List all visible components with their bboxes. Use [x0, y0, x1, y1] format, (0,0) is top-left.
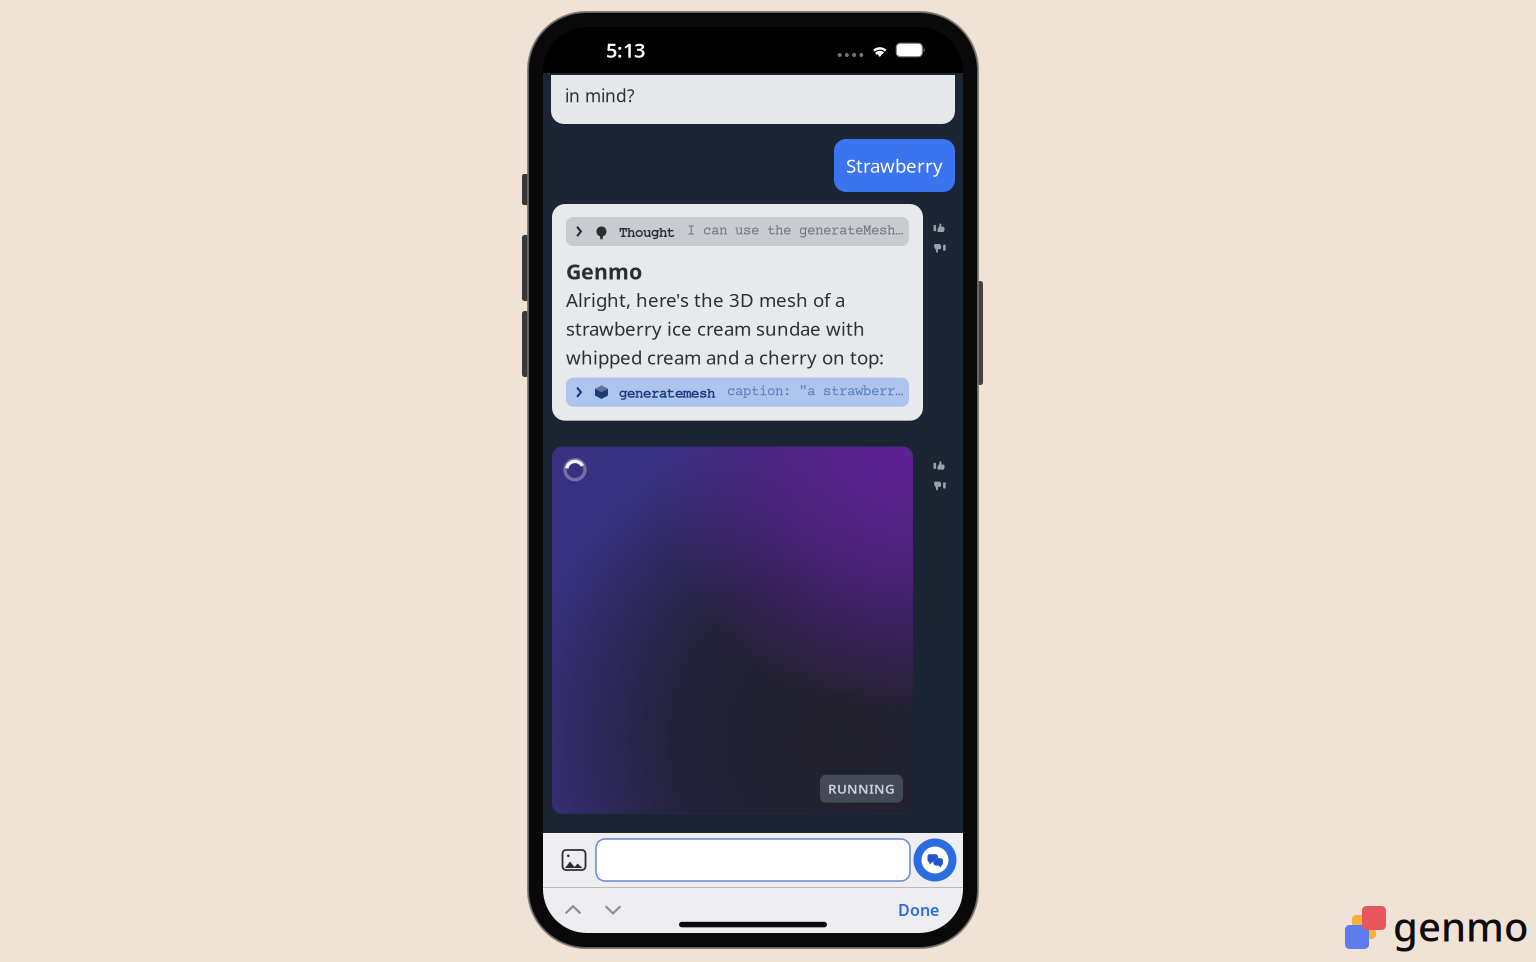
staticText: I can use the generateMesh … [687, 224, 909, 239]
button[interactable]: Send message [910, 834, 960, 886]
button[interactable]: generatemesh [566, 378, 909, 407]
staticText: 5:13 [606, 37, 645, 63]
button[interactable]: Next field [593, 894, 633, 926]
button[interactable]: Strawberry [834, 139, 955, 192]
staticText: caption: "a strawberry… [727, 384, 909, 400]
staticText: Strawberry [846, 153, 943, 178]
staticText: Thought [619, 222, 675, 241]
button[interactable]: Thumbs down [927, 479, 949, 494]
staticText: genmo [1393, 899, 1528, 952]
staticText: RUNNING [828, 780, 895, 797]
button[interactable]: Done [888, 894, 949, 926]
button[interactable]: Thumbs down [927, 241, 949, 256]
button[interactable]: Add photo [552, 838, 596, 882]
staticText: Alright, here's the 3D mesh of a strawbe… [566, 287, 884, 370]
button[interactable]: Thumbs up [927, 455, 949, 470]
staticText: generatemesh [619, 383, 715, 402]
staticText: Genmo [566, 257, 642, 285]
staticText: sundae? Do you have any specific styles … [565, 52, 941, 75]
staticText: Done [898, 899, 939, 920]
button[interactable]: Previous field [553, 894, 593, 926]
button[interactable]: Thought [566, 217, 909, 246]
button[interactable]: Thumbs up [927, 217, 949, 232]
staticText: in mind? [565, 84, 635, 107]
